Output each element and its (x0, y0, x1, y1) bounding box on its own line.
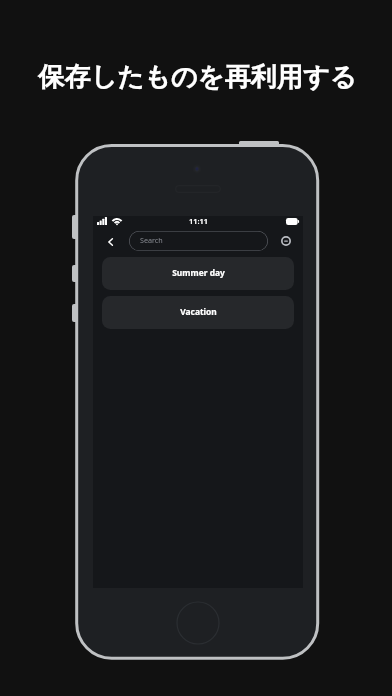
button[interactable]: Back (102, 231, 119, 253)
staticText: Summer day (172, 267, 225, 278)
staticText: 11:11 (189, 216, 208, 226)
staticText: Search (140, 235, 163, 245)
button[interactable]: Summer day (102, 257, 294, 290)
staticText: Vacation (180, 306, 217, 317)
button[interactable]: Search (129, 231, 268, 251)
staticText: 保存したものを再利用する (38, 61, 357, 94)
button[interactable]: More options (277, 230, 294, 252)
button[interactable]: Vacation (102, 296, 294, 329)
